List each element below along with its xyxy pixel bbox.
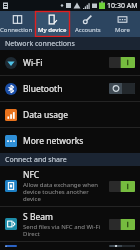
staticText: 10:30 AM [107, 1, 138, 11]
staticText: My device [38, 26, 67, 34]
button[interactable]: NFC [0, 166, 140, 206]
staticText: Accounts [75, 26, 101, 34]
button[interactable]: On [109, 57, 135, 68]
staticText: Send files via NFC and Wi-Fi Direct [23, 223, 105, 238]
staticText: More networks [23, 135, 84, 147]
staticText: Data usage [23, 109, 69, 121]
staticText: Wi-Fi [23, 57, 43, 69]
button[interactable]: More networks [0, 128, 140, 153]
staticText: Bluetooth [23, 83, 63, 95]
button[interactable]: Connections [0, 11, 35, 37]
staticText: Network connections [5, 39, 75, 49]
button[interactable]: On [109, 219, 135, 230]
staticText: S Beam [23, 211, 53, 223]
staticText: NFC [23, 169, 40, 181]
button[interactable]: Bluetooth [0, 76, 140, 101]
button[interactable]: More [105, 11, 140, 37]
button[interactable]: On [109, 181, 135, 192]
button[interactable]: My device [35, 11, 70, 37]
staticText: More [115, 26, 130, 34]
button[interactable]: Data usage [0, 102, 140, 127]
staticText: Connections [0, 26, 35, 34]
button[interactable]: Wi-Fi [0, 50, 140, 75]
button[interactable]: Off [109, 245, 135, 247]
staticText: Allow data exchange when device touches … [23, 181, 105, 203]
button[interactable]: Nearby devices [0, 242, 140, 250]
staticText: Connect and share [5, 155, 67, 165]
button[interactable]: S Beam [0, 207, 140, 241]
button[interactable]: Accounts [70, 11, 105, 37]
button[interactable]: Off [109, 83, 135, 94]
